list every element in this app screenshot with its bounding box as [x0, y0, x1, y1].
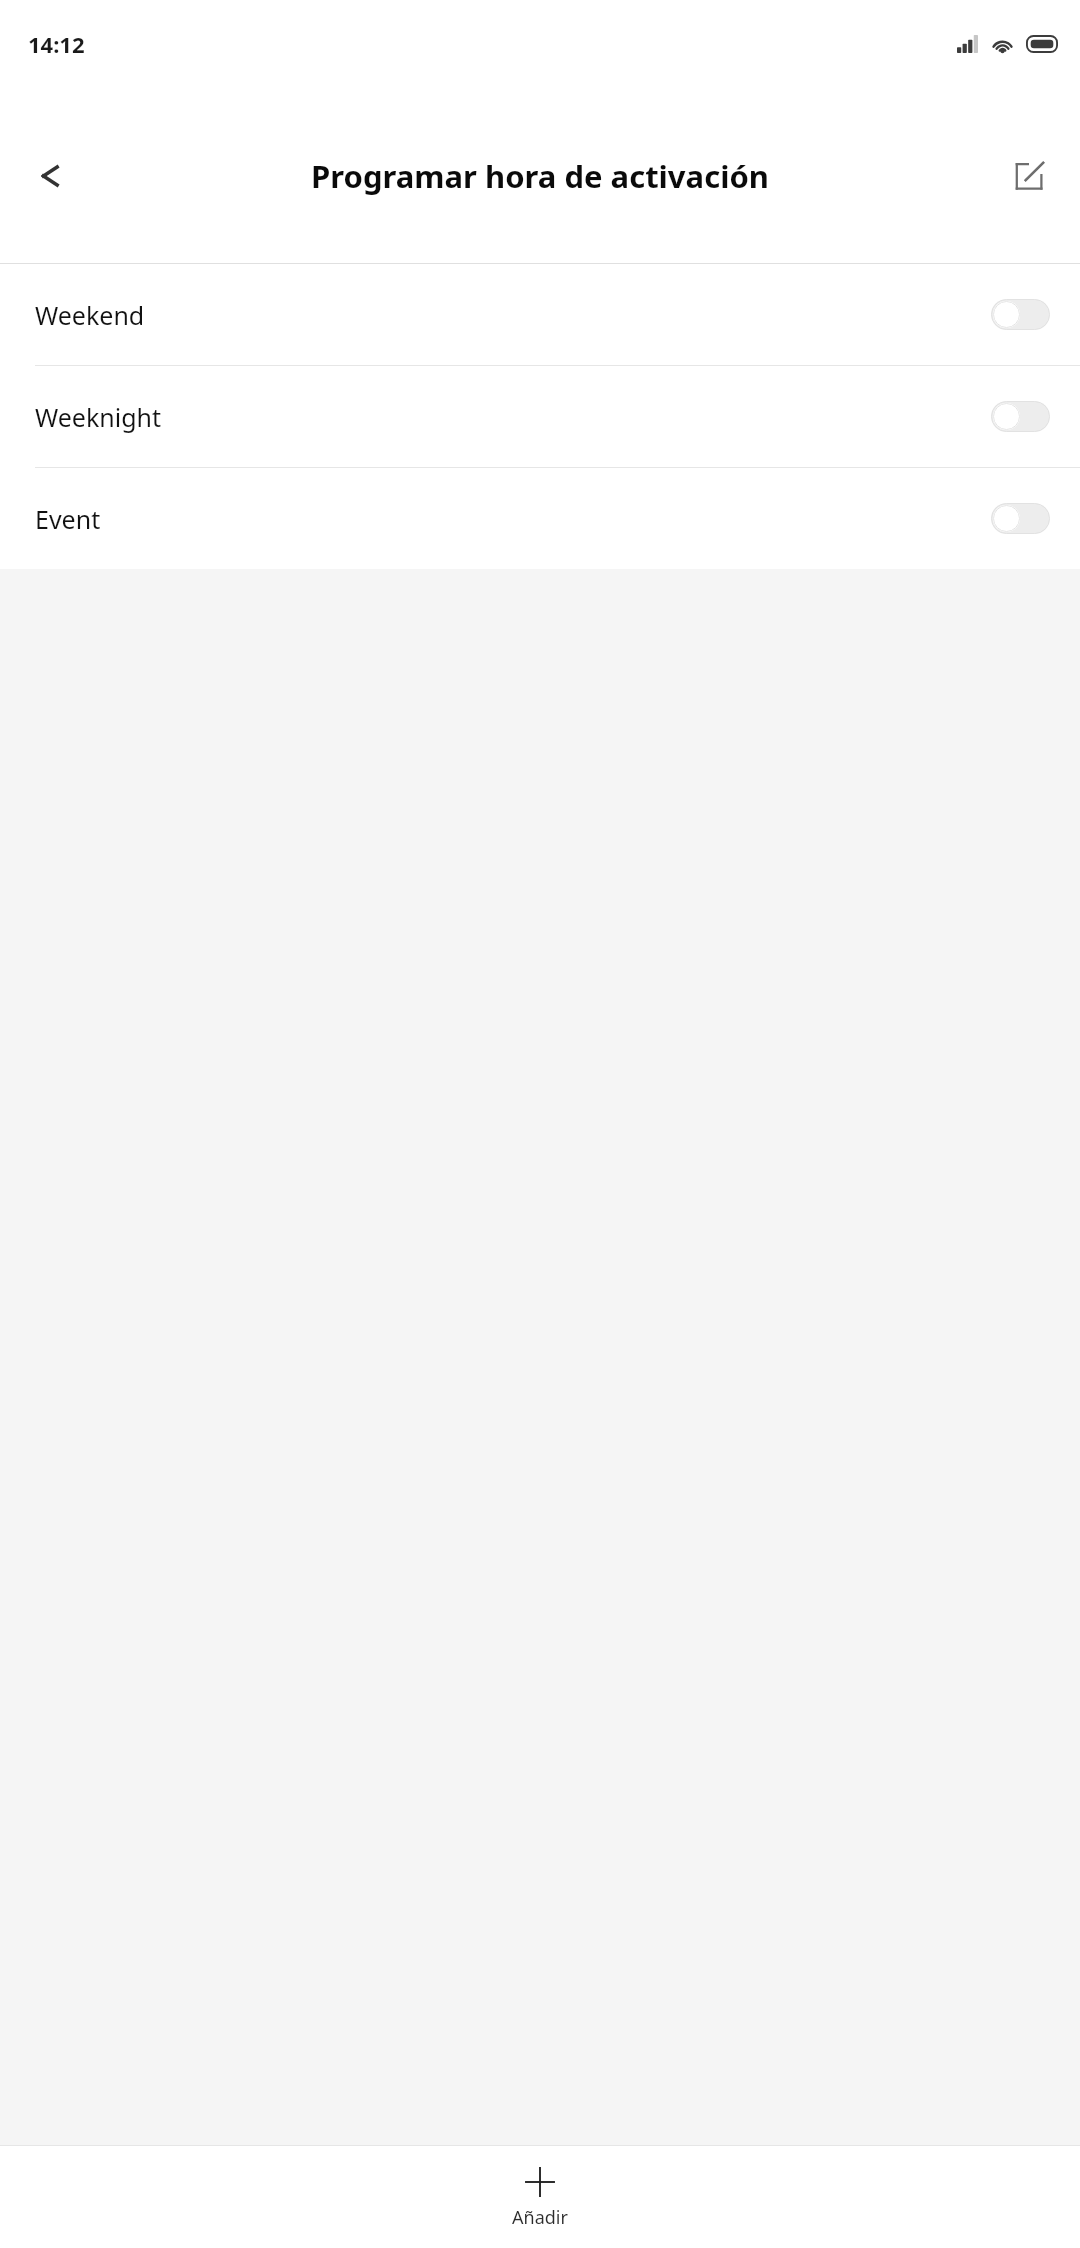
button[interactable]: Toggle — [991, 401, 1050, 432]
staticText: 14:12 — [28, 29, 85, 59]
button[interactable]: Toggle — [991, 299, 1050, 330]
button[interactable]: Añadir — [0, 2146, 1080, 2248]
staticText: Programar hora de activación — [311, 155, 769, 197]
staticText: Weeknight — [35, 400, 991, 434]
button[interactable]: Event — [0, 468, 1080, 569]
button[interactable]: Toggle — [991, 503, 1050, 534]
staticText: Event — [35, 502, 991, 536]
button[interactable]: Weeknight — [0, 366, 1080, 467]
button[interactable]: Edit — [994, 140, 1066, 212]
button[interactable]: Back — [14, 140, 86, 212]
staticText: Weekend — [35, 298, 991, 332]
button[interactable]: Weekend — [0, 264, 1080, 365]
staticText: Añadir — [512, 2205, 568, 2230]
